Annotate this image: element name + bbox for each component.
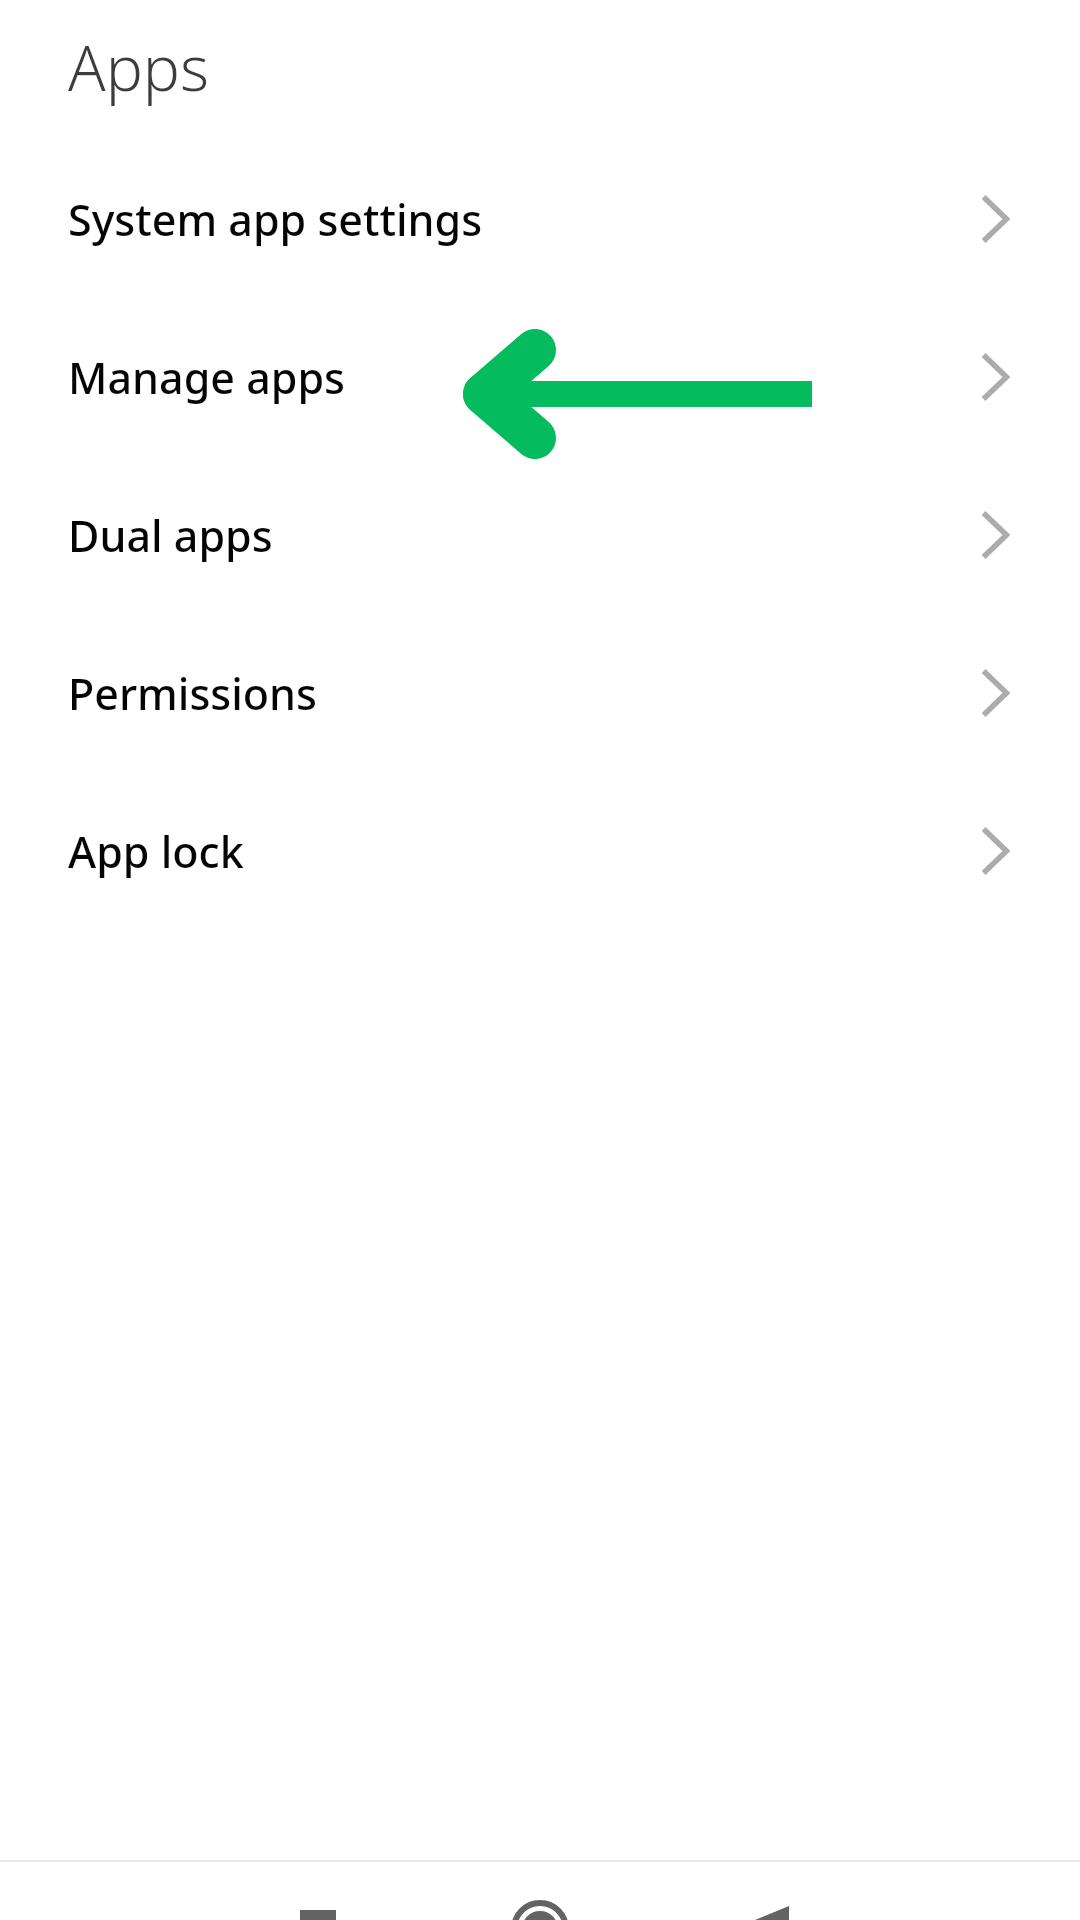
staticText: System app settings <box>68 190 980 249</box>
button[interactable]: Permissions <box>0 614 1080 772</box>
button[interactable]: System app settings <box>0 140 1080 298</box>
staticText: Manage apps <box>68 348 980 407</box>
button[interactable]: App lock <box>0 772 1080 930</box>
button[interactable]: Dual apps <box>0 456 1080 614</box>
staticText: App lock <box>68 822 980 881</box>
staticText: Apps <box>68 25 209 109</box>
button[interactable]: Recent apps <box>282 1862 354 1920</box>
button[interactable]: Manage apps <box>0 298 1080 456</box>
staticText: Permissions <box>68 664 980 723</box>
button[interactable]: Back <box>736 1862 808 1920</box>
staticText: Dual apps <box>68 506 980 565</box>
button[interactable]: Home <box>500 1862 580 1920</box>
